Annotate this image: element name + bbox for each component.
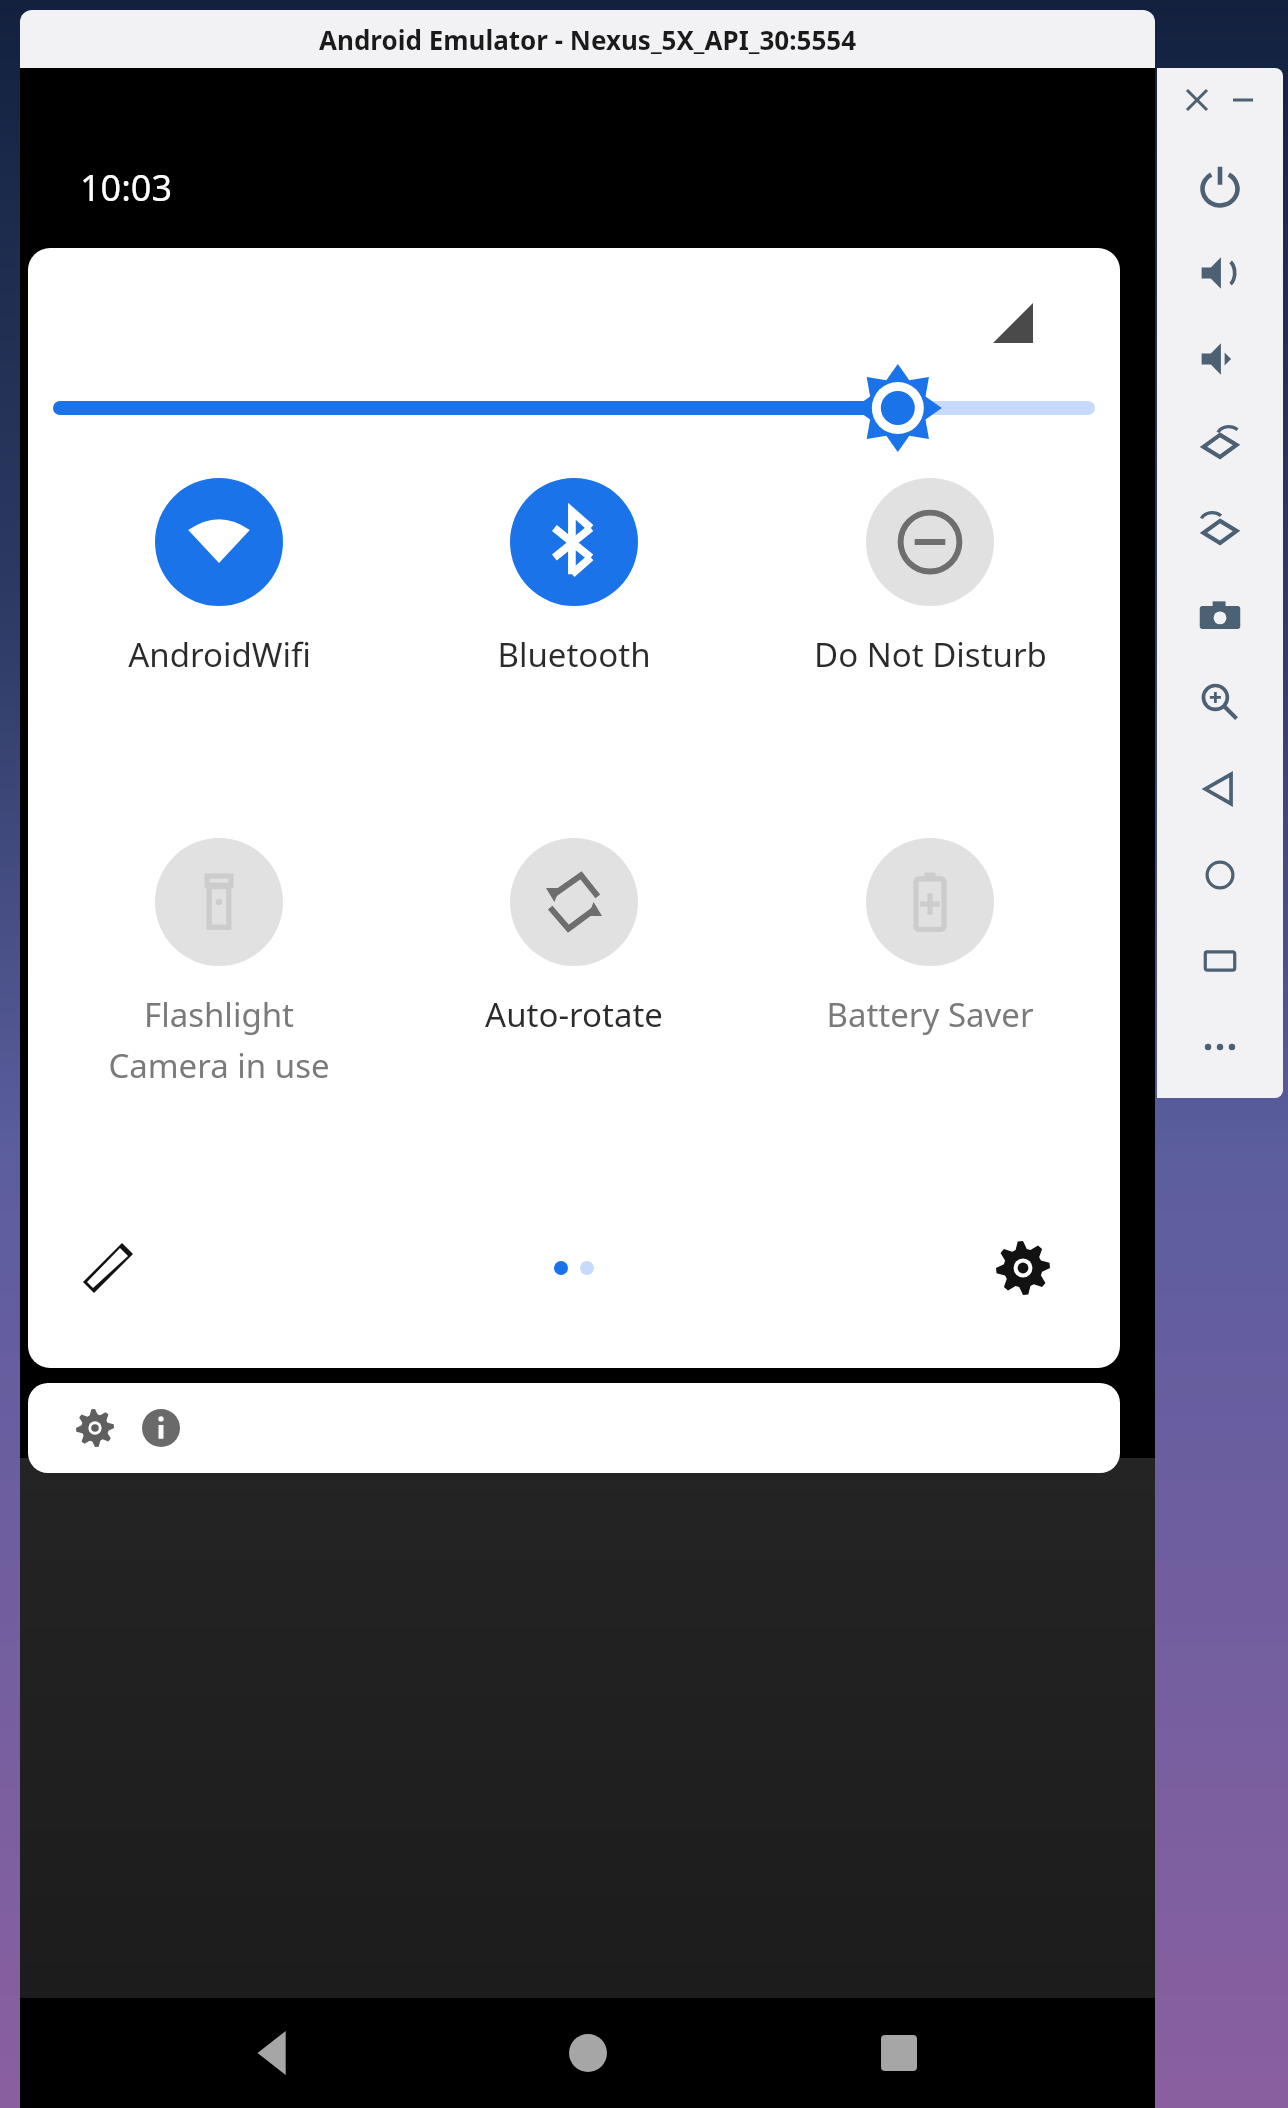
staticText: AndroidWifi: [128, 632, 311, 677]
staticText: Battery Saver: [826, 992, 1034, 1037]
button[interactable]: Battery Saver: [765, 838, 1095, 1037]
staticText: 10:03: [80, 163, 173, 212]
button[interactable]: Recent apps: [844, 1998, 954, 2108]
button[interactable]: More: [1177, 1004, 1263, 1090]
staticText: Do Not Disturb: [814, 632, 1047, 677]
button[interactable]: [28, 1383, 1120, 1473]
button[interactable]: Home: [1177, 832, 1263, 918]
button[interactable]: Settings: [983, 1228, 1063, 1308]
button[interactable]: Overview: [1177, 918, 1263, 1004]
button[interactable]: AndroidWifi: [54, 478, 384, 677]
button[interactable]: Power: [1177, 144, 1263, 230]
other: Mobile signal: [978, 288, 1048, 358]
button[interactable]: Volume down: [1177, 316, 1263, 402]
button[interactable]: Auto-rotate: [409, 838, 739, 1037]
button[interactable]: Volume up: [1177, 230, 1263, 316]
staticText: Android Emulator - Nexus_5X_API_30:5554: [319, 22, 857, 57]
button[interactable]: Close: [1177, 80, 1217, 120]
staticText: Flashlight: [144, 992, 294, 1037]
button[interactable]: Do Not Disturb: [765, 478, 1095, 677]
button[interactable]: Flashlight: [54, 838, 384, 1088]
button[interactable]: Zoom: [1177, 660, 1263, 746]
button[interactable]: Take screenshot: [1177, 574, 1263, 660]
button[interactable]: Edit tiles: [68, 1228, 148, 1308]
button[interactable]: Back: [1177, 746, 1263, 832]
button[interactable]: Bluetooth: [409, 478, 739, 677]
button[interactable]: Brightness: [60, 378, 1088, 438]
staticText: Bluetooth: [497, 632, 651, 677]
staticText: Camera in use: [108, 1043, 330, 1088]
button[interactable]: Rotate left: [1177, 402, 1263, 488]
button[interactable]: Minimize: [1223, 80, 1263, 120]
button[interactable]: Back: [221, 1998, 331, 2108]
button[interactable]: Rotate right: [1177, 488, 1263, 574]
button[interactable]: Home: [533, 1998, 643, 2108]
staticText: Auto-rotate: [485, 992, 663, 1037]
